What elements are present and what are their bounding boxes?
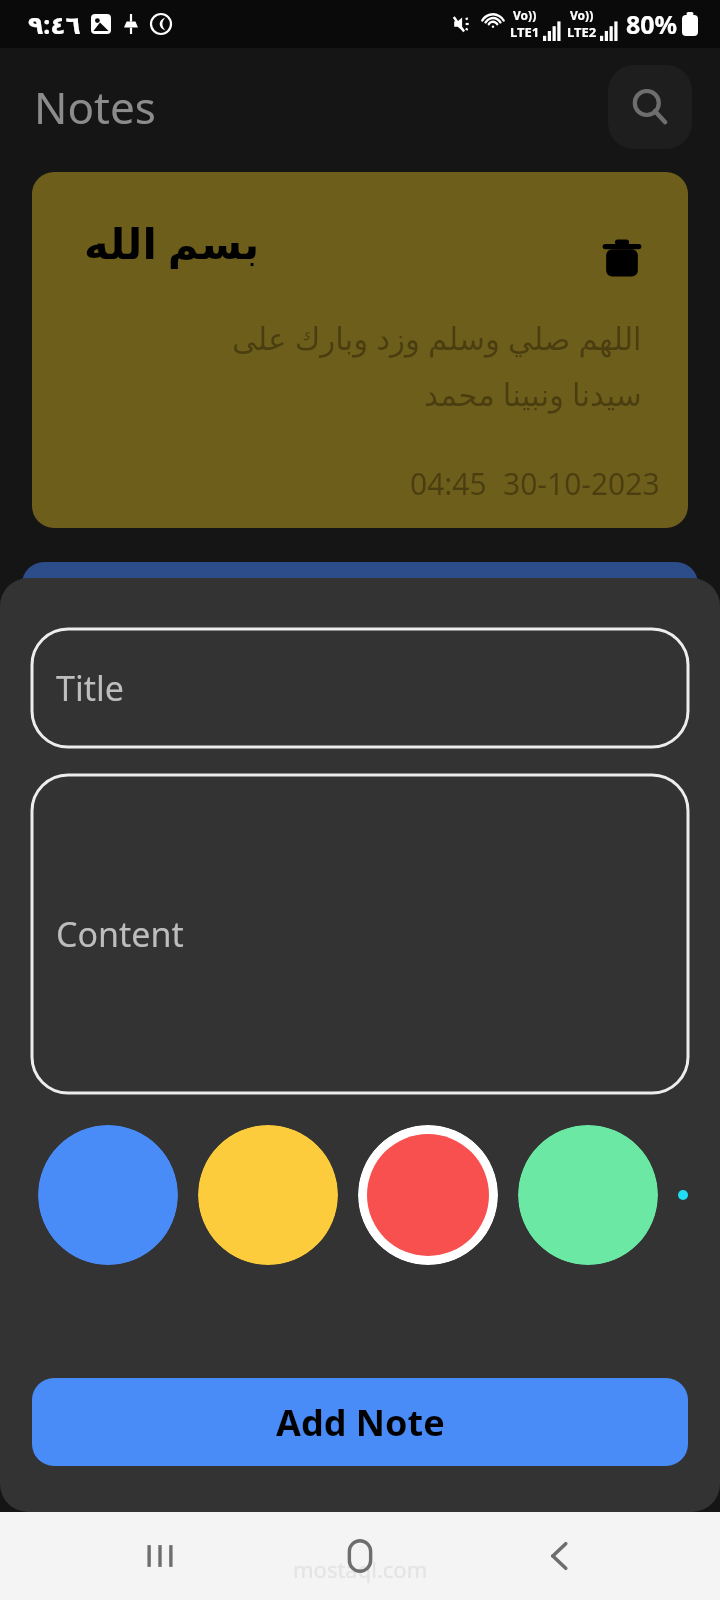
staticText: 04:45 (410, 463, 487, 504)
button[interactable]: Home (320, 1516, 400, 1596)
staticText: LTE2 (567, 23, 597, 41)
button[interactable]: Colour swatch (358, 1125, 498, 1265)
staticText: Add Note (276, 1398, 445, 1447)
button[interactable]: Recents (120, 1516, 200, 1596)
staticText: ٩:٤٦ (28, 7, 81, 41)
button[interactable]: Back (520, 1516, 600, 1596)
staticText: Vo)) (570, 7, 594, 23)
staticText: اللهم صلي وسلم وزد وبارك على (232, 317, 642, 359)
button[interactable]: Search (608, 65, 692, 149)
staticText: mostaql.com (293, 1554, 428, 1584)
staticText: Title (56, 665, 124, 711)
button[interactable]: بسم الله (32, 172, 688, 528)
staticText: Notes (34, 77, 156, 137)
staticText: LTE1 (510, 23, 540, 41)
button[interactable]: Delete note (594, 230, 650, 286)
staticText: 80% (626, 7, 678, 41)
staticText: 30-10-2023 (503, 463, 660, 504)
staticText: سيدنا ونبينا محمد (424, 373, 642, 415)
button[interactable]: Colour swatch (198, 1125, 338, 1265)
button[interactable]: Colour swatch (678, 1125, 688, 1265)
button[interactable]: Add Note (32, 1378, 688, 1466)
button[interactable]: Title (32, 629, 688, 747)
button[interactable]: Colour swatch (38, 1125, 178, 1265)
staticText: Vo)) (513, 7, 537, 23)
staticText: بسم الله (84, 214, 260, 271)
button[interactable]: Colour swatch (518, 1125, 658, 1265)
button[interactable]: Content (32, 775, 688, 1093)
staticText: Content (56, 911, 184, 957)
